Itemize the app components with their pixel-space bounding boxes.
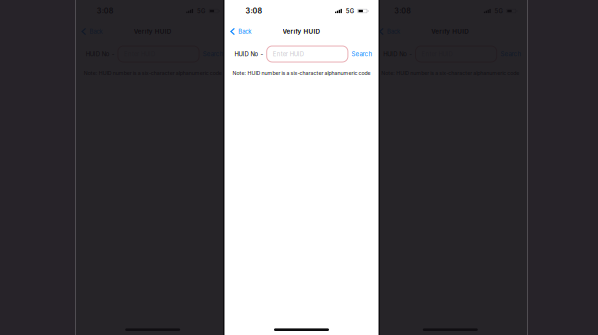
staticText: HUID No - bbox=[234, 50, 263, 58]
button[interactable]: Search bbox=[348, 46, 376, 62]
staticText: 3:08 bbox=[97, 7, 114, 15]
button[interactable]: Back bbox=[373, 25, 405, 38]
staticText: Verify HUID bbox=[282, 28, 320, 35]
button[interactable]: Back bbox=[224, 25, 256, 38]
staticText: Verify HUID bbox=[134, 28, 172, 35]
button[interactable]: Search bbox=[497, 46, 525, 62]
staticText: Verify HUID bbox=[431, 28, 469, 35]
staticText: Enter HUID bbox=[273, 50, 304, 58]
staticText: 3:08 bbox=[245, 7, 262, 15]
staticText: HUID No - bbox=[86, 50, 115, 58]
staticText: Note: HUID number is a six-character alp… bbox=[232, 70, 370, 76]
staticText: Back bbox=[238, 28, 251, 35]
staticText: 5G bbox=[197, 7, 205, 15]
staticText: 5G bbox=[495, 7, 503, 15]
staticText: Search bbox=[352, 50, 373, 58]
staticText: HUID No - bbox=[383, 50, 412, 58]
button[interactable]: Back bbox=[76, 25, 107, 38]
staticText: 5G bbox=[346, 7, 354, 15]
button[interactable]: Search bbox=[199, 46, 227, 62]
staticText: Search bbox=[500, 50, 521, 58]
staticText: 3:08 bbox=[394, 7, 411, 15]
staticText: Note: HUID number is a six-character alp… bbox=[84, 70, 222, 76]
staticText: Note: HUID number is a six-character alp… bbox=[381, 70, 519, 76]
staticText: Back bbox=[387, 28, 400, 35]
staticText: Back bbox=[89, 28, 102, 35]
staticText: Search bbox=[203, 50, 224, 58]
